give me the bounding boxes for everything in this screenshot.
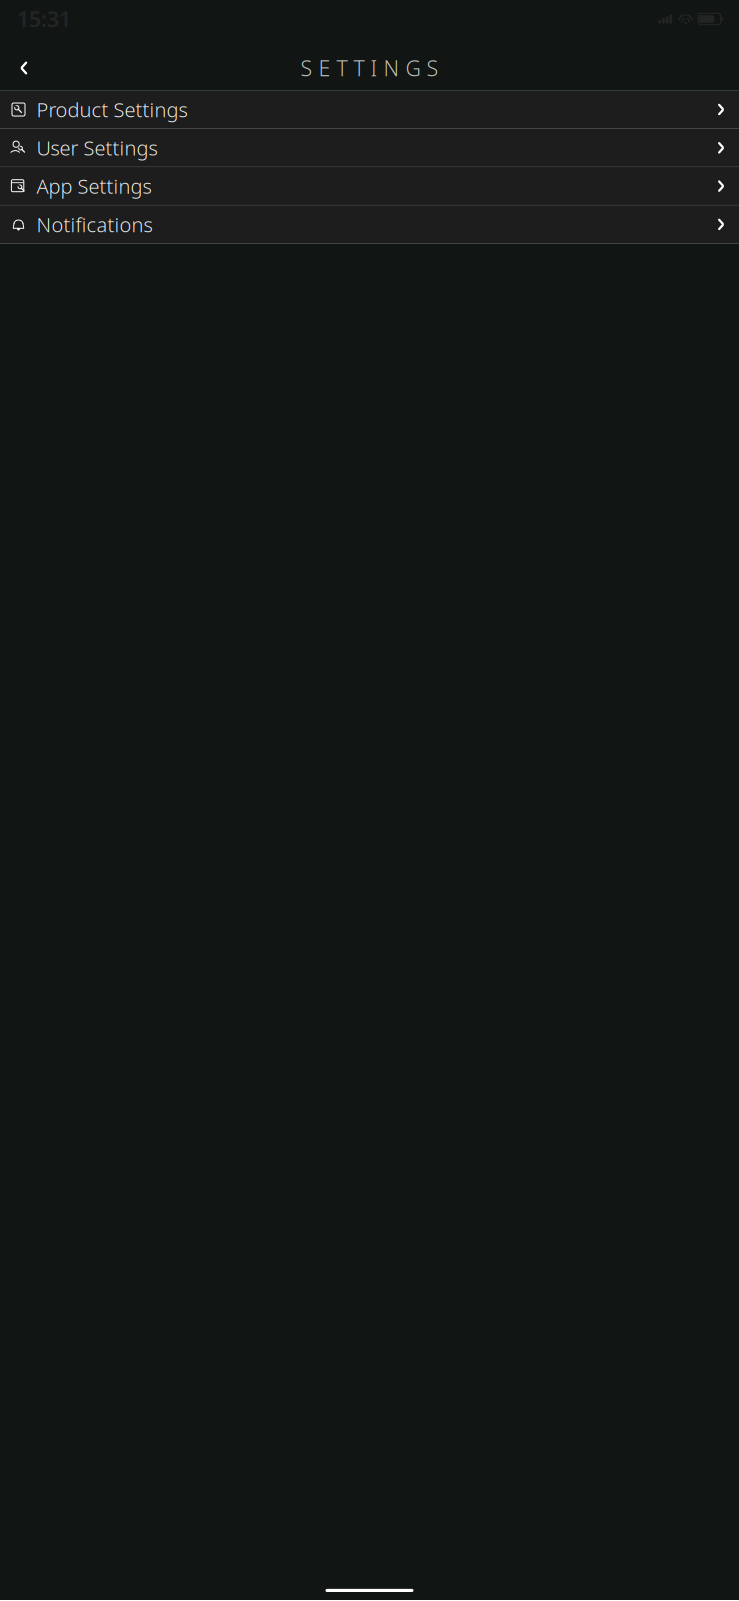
button[interactable]: Back [4, 48, 44, 88]
staticText: 15:31 [17, 5, 71, 33]
staticText: Notifications [37, 211, 153, 238]
staticText: User Settings [37, 134, 158, 161]
staticText: Product Settings [37, 96, 188, 123]
staticText: S E T T I N G S [300, 54, 438, 82]
button[interactable]: Notifications [0, 206, 739, 244]
button[interactable]: App Settings [0, 167, 739, 206]
button[interactable]: User Settings [0, 129, 739, 167]
button[interactable]: Product Settings [0, 91, 739, 129]
staticText: App Settings [37, 173, 152, 199]
